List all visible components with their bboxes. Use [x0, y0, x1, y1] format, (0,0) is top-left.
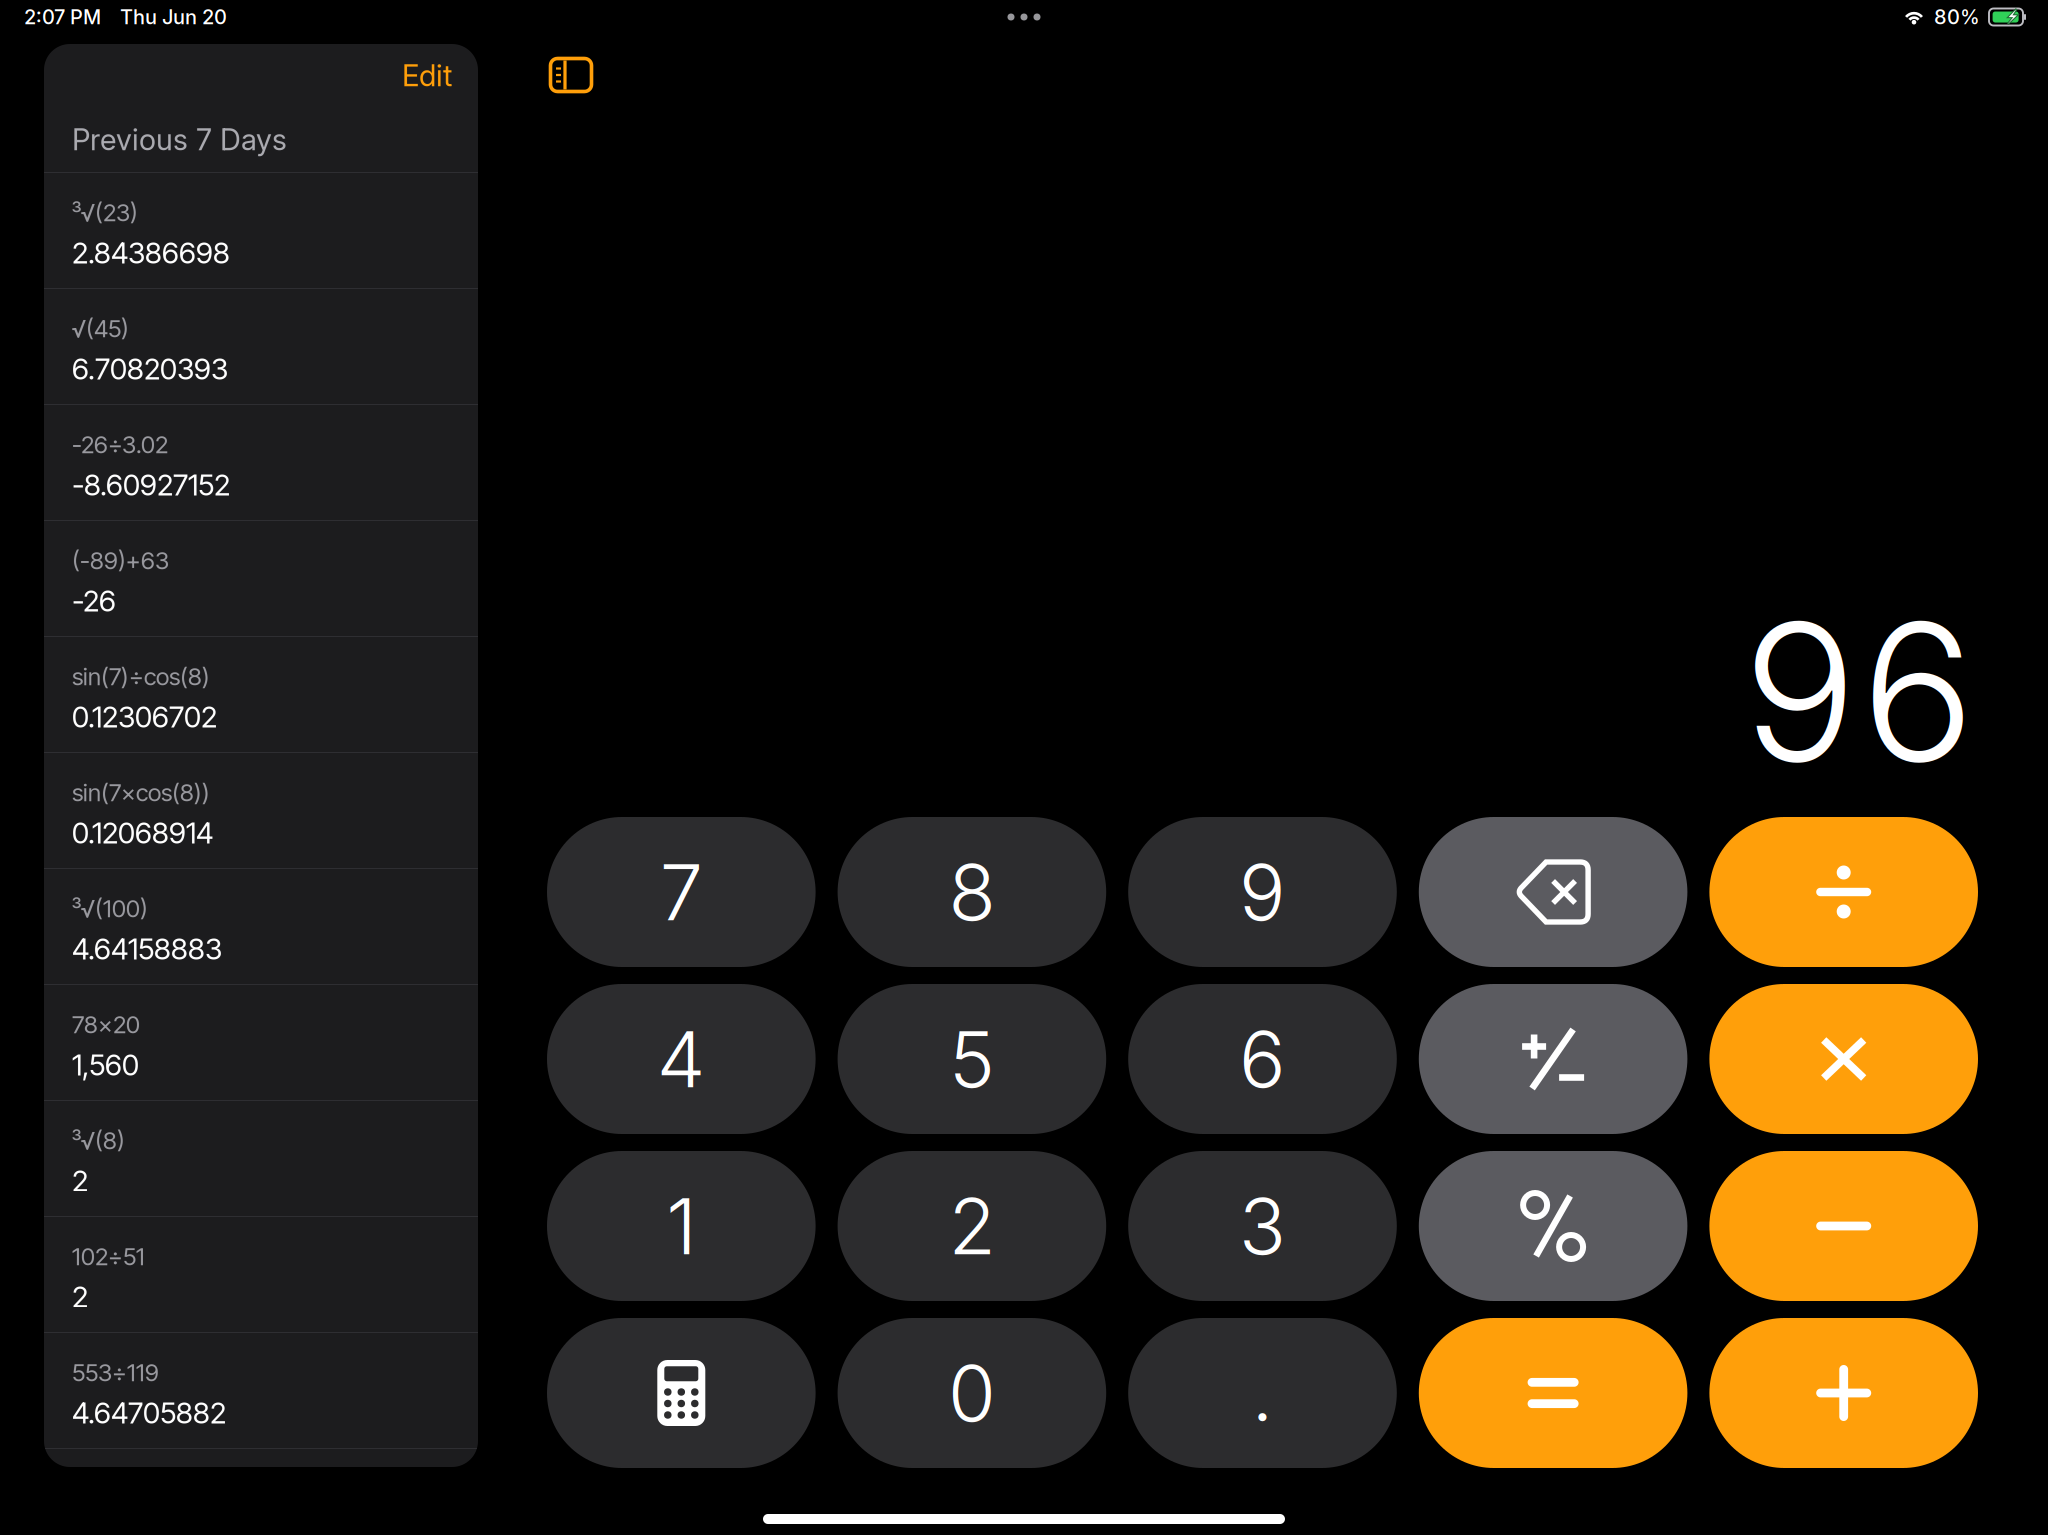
button[interactable]: -26÷3.02 — [44, 405, 478, 520]
staticText: √(45) — [72, 314, 129, 343]
staticText: 1,560 — [72, 1047, 139, 1082]
staticText: 4.64158883 — [72, 931, 222, 966]
button[interactable]: Equals — [1419, 1318, 1687, 1468]
staticText: Edit — [402, 58, 452, 93]
staticText: -8.60927152 — [72, 467, 230, 502]
staticText: 2 — [948, 1179, 995, 1273]
staticText: ³√(100) — [72, 894, 148, 923]
staticText: -26÷3.02 — [72, 430, 168, 459]
staticText: ³√(23) — [72, 198, 138, 227]
staticText: 0.12068914 — [72, 815, 213, 850]
button[interactable]: 0 — [838, 1318, 1106, 1468]
button[interactable]: Add — [1709, 1318, 1978, 1468]
staticText: 6 — [1239, 1012, 1286, 1106]
staticText: 6.70820393 — [72, 351, 228, 386]
button[interactable]: Multiply — [1709, 984, 1978, 1134]
staticText: 7 — [660, 845, 703, 939]
staticText: 4.64705882 — [72, 1395, 226, 1430]
button[interactable]: 1 — [547, 1151, 816, 1301]
button[interactable]: sin(7)÷cos(8) — [44, 637, 478, 752]
staticText: 1 — [666, 1179, 696, 1273]
button[interactable]: ³√(100) — [44, 869, 478, 984]
staticText: Thu Jun 20 — [120, 5, 227, 29]
staticText: 2 — [72, 1279, 88, 1314]
button[interactable]: ³√(23) — [44, 173, 478, 288]
button[interactable]: Calculator — [547, 1318, 816, 1468]
staticText: 2.84386698 — [72, 235, 230, 270]
button[interactable]: Divide — [1709, 817, 1978, 967]
button[interactable]: 5 — [838, 984, 1106, 1134]
button[interactable]: (-89)+63 — [44, 521, 478, 636]
button[interactable]: 2 — [838, 1151, 1106, 1301]
button[interactable]: 6 — [1128, 984, 1397, 1134]
staticText: 8 — [948, 845, 995, 939]
button[interactable]: 3 — [1128, 1151, 1397, 1301]
button[interactable]: Delete — [1419, 817, 1687, 967]
button[interactable]: sin(7×cos(8)) — [44, 753, 478, 868]
staticText: -26 — [72, 583, 116, 618]
button[interactable]: Percent — [1419, 1151, 1687, 1301]
staticText: 553÷119 — [72, 1358, 159, 1387]
staticText: 0 — [948, 1346, 996, 1440]
staticText: sin(7×cos(8)) — [72, 778, 210, 807]
button[interactable]: 4 — [547, 984, 816, 1134]
staticText: 2:07 PM — [24, 5, 101, 29]
staticText: Previous 7 Days — [72, 122, 287, 157]
button[interactable]: Decimal point — [1128, 1318, 1397, 1468]
staticText: 5 — [949, 1012, 995, 1106]
button[interactable]: Subtract — [1709, 1151, 1978, 1301]
button[interactable]: Plus Minus — [1419, 984, 1687, 1134]
staticText: 0.12306702 — [72, 699, 217, 734]
staticText: 78×20 — [72, 1010, 140, 1039]
button[interactable]: Show Sidebar — [531, 38, 611, 112]
button[interactable]: 102÷51 — [44, 1217, 478, 1332]
button[interactable]: 7 — [547, 817, 816, 967]
staticText: 80% — [1934, 5, 1980, 29]
staticText: ³√(8) — [72, 1126, 125, 1155]
button[interactable]: 9 — [1128, 817, 1397, 967]
staticText: (-89)+63 — [72, 546, 169, 575]
staticText: . — [1251, 1346, 1273, 1440]
staticText: 9 — [1239, 845, 1286, 939]
button[interactable]: 78×20 — [44, 985, 478, 1100]
button[interactable]: Edit — [342, 44, 478, 107]
button[interactable]: 8 — [838, 817, 1106, 967]
button[interactable]: √(45) — [44, 289, 478, 404]
button[interactable]: ³√(8) — [44, 1101, 478, 1216]
staticText: sin(7)÷cos(8) — [72, 662, 210, 691]
button[interactable]: 553÷119 — [44, 1333, 478, 1448]
staticText: 3 — [1239, 1179, 1286, 1273]
staticText: 96 — [1743, 577, 1975, 807]
staticText: 4 — [657, 1012, 706, 1106]
staticText: 102÷51 — [72, 1242, 145, 1271]
staticText: 2 — [72, 1163, 88, 1198]
